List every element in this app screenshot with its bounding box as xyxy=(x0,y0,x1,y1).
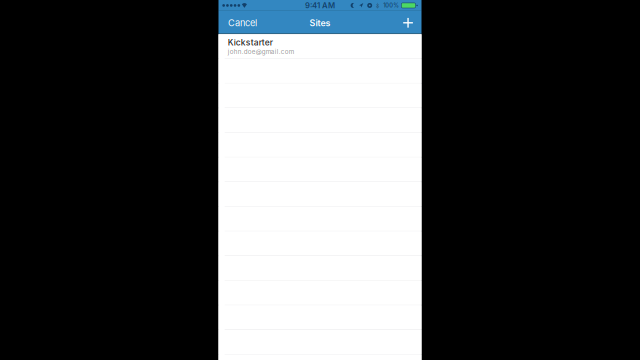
staticText: 9:41 AM xyxy=(305,1,335,10)
button[interactable] xyxy=(218,83,421,108)
staticText: 100% xyxy=(383,2,399,9)
button[interactable] xyxy=(218,182,421,206)
button[interactable]: Add site xyxy=(394,18,421,33)
button[interactable] xyxy=(218,207,421,231)
staticText: Kickstarter xyxy=(228,37,273,48)
button[interactable] xyxy=(218,330,421,354)
button[interactable] xyxy=(218,59,421,83)
button[interactable]: Kickstarter xyxy=(218,34,421,58)
button[interactable] xyxy=(218,305,421,329)
button[interactable] xyxy=(218,108,421,132)
button[interactable] xyxy=(218,157,421,181)
button[interactable] xyxy=(218,256,421,280)
staticText: Sites xyxy=(309,17,330,28)
staticText: john.doe@gmail.com xyxy=(228,48,294,55)
button[interactable] xyxy=(218,281,421,305)
button[interactable]: Cancel xyxy=(218,17,265,33)
staticText: Cancel xyxy=(228,17,257,28)
button[interactable] xyxy=(218,133,421,157)
button[interactable] xyxy=(218,231,421,255)
